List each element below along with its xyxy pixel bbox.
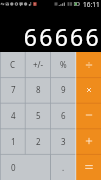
button[interactable]: Divide	[76, 52, 101, 77]
button[interactable]: 9	[51, 77, 76, 102]
staticText: .	[62, 162, 65, 173]
button[interactable]: %	[51, 52, 76, 77]
button[interactable]: Equals	[76, 154, 101, 180]
staticText: 4	[11, 110, 16, 121]
staticText: 6	[61, 110, 66, 121]
staticText: %	[60, 59, 67, 70]
button[interactable]: +/-	[26, 52, 51, 77]
staticText: 16:11	[83, 0, 100, 8]
staticText: 7	[11, 84, 16, 95]
button[interactable]: 1	[0, 128, 26, 154]
button[interactable]: 4	[0, 102, 26, 128]
staticText: 3	[61, 136, 66, 147]
staticText: 9	[61, 84, 66, 95]
staticText: 2	[36, 136, 41, 147]
staticText: +/-	[33, 59, 44, 70]
staticText: 1	[11, 136, 16, 147]
button[interactable]: 6	[51, 102, 76, 128]
staticText: 66666	[23, 21, 101, 52]
staticText: C	[10, 59, 16, 70]
button[interactable]: Plus	[76, 128, 101, 154]
button[interactable]: 5	[26, 102, 51, 128]
button[interactable]: Minus	[76, 102, 101, 128]
staticText: 5	[36, 110, 41, 121]
button[interactable]: 0	[0, 154, 51, 180]
button[interactable]: .	[51, 154, 76, 180]
button[interactable]: 7	[0, 77, 26, 102]
staticText: 0	[11, 162, 16, 173]
button[interactable]: 3	[51, 128, 76, 154]
button[interactable]: C	[0, 52, 26, 77]
button[interactable]: 2	[26, 128, 51, 154]
button[interactable]: Multiply	[76, 77, 101, 102]
button[interactable]: 8	[26, 77, 51, 102]
staticText: 8	[36, 84, 41, 95]
